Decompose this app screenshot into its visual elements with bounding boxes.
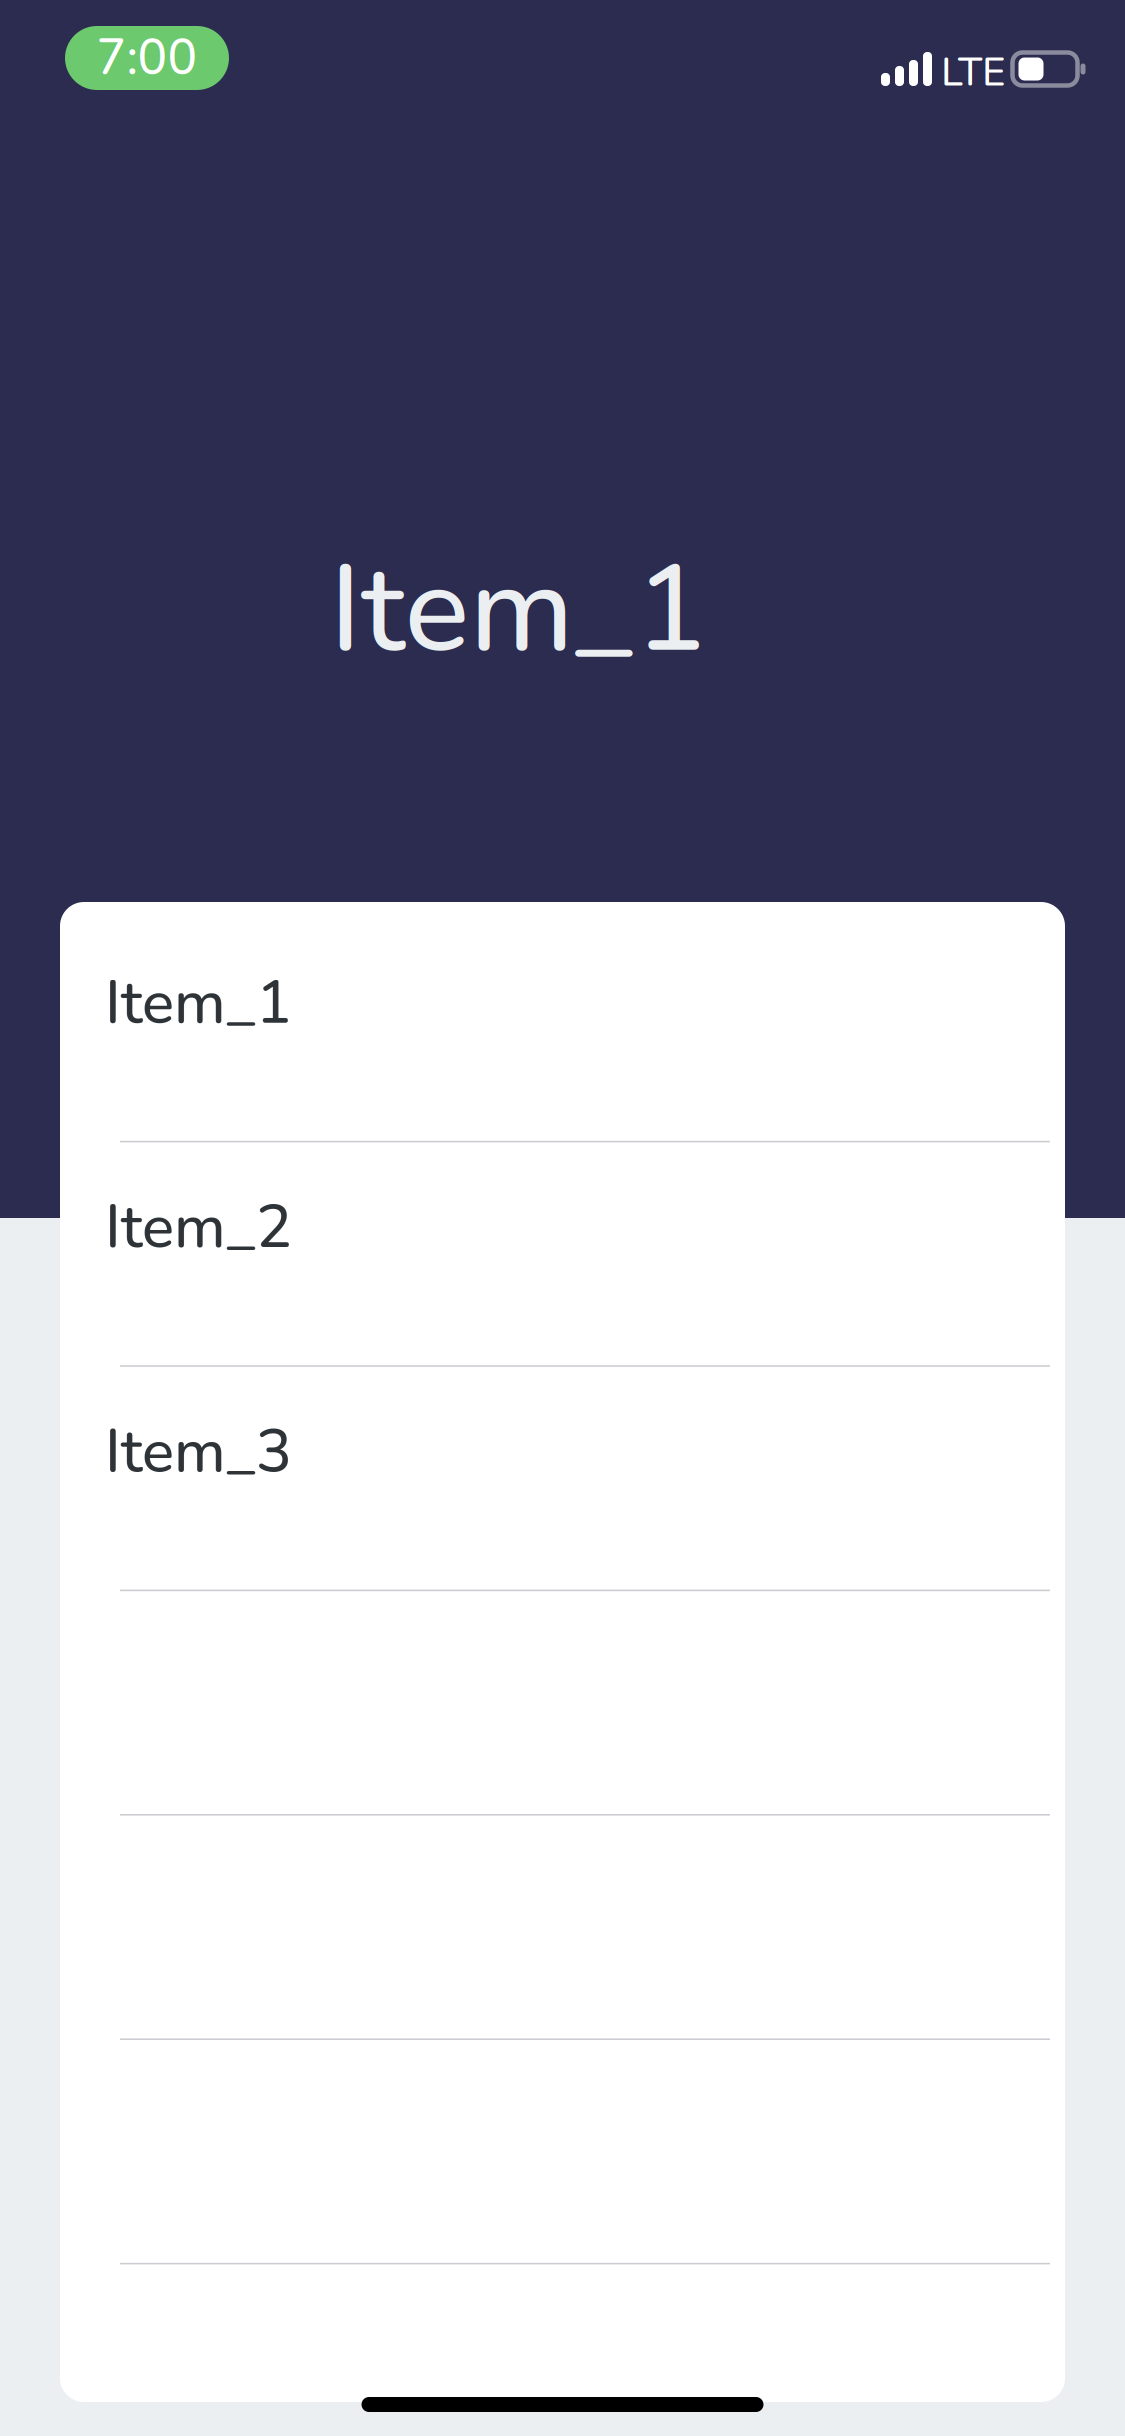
button[interactable] <box>60 1591 1065 1816</box>
staticText: Item_3 <box>105 1411 292 1493</box>
staticText: Item_2 <box>105 1186 292 1268</box>
staticText: 7:00 <box>96 24 197 92</box>
staticText: Item_1 <box>329 527 707 692</box>
button[interactable] <box>60 2040 1065 2264</box>
staticText: Item_1 <box>105 962 292 1044</box>
button[interactable]: Item_3 <box>60 1367 1065 1591</box>
button[interactable] <box>60 1816 1065 2040</box>
button[interactable]: Item_1 <box>60 918 1065 1142</box>
staticText: LTE <box>941 45 1005 100</box>
button[interactable]: Item_2 <box>60 1142 1065 1367</box>
button[interactable] <box>60 2264 1065 2436</box>
button[interactable]: 7:00 <box>65 26 229 90</box>
